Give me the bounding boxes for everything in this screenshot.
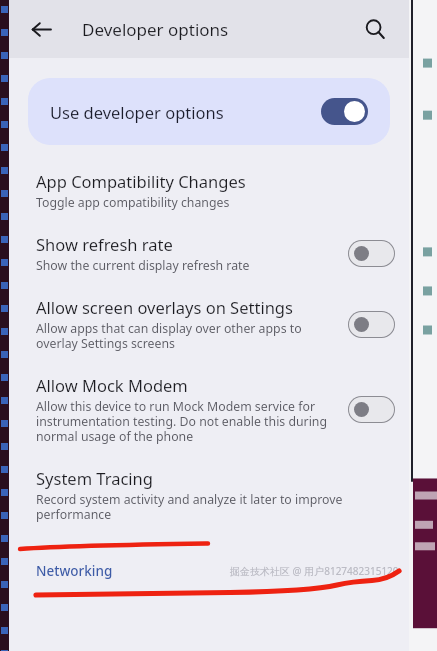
staticText: Toggle app compatibility changes: [36, 194, 230, 211]
button[interactable]: Toggle: [348, 396, 395, 423]
staticText: Record system activity and analyze it la…: [36, 491, 385, 523]
button[interactable]: Allow Mock Modem: [9, 363, 409, 456]
button[interactable]: Use developer options toggle: [321, 98, 368, 125]
button[interactable]: Toggle: [348, 240, 395, 267]
staticText: Allow Mock Modem: [36, 374, 188, 396]
button[interactable]: Search: [355, 9, 395, 49]
button[interactable]: Show refresh rate: [9, 222, 409, 285]
staticText: Show the current display refresh rate: [36, 257, 250, 274]
button[interactable]: Toggle: [348, 311, 395, 338]
button[interactable]: Allow screen overlays on Settings: [9, 285, 409, 363]
staticText: System Tracing: [36, 467, 153, 489]
staticText: Allow screen overlays on Settings: [36, 296, 293, 318]
button[interactable]: System Tracing: [9, 456, 409, 534]
staticText: 掘金技术社区 @ 用户8127482315120: [230, 564, 399, 578]
staticText: Allow apps that can display over other a…: [36, 320, 338, 352]
staticText: Use developer options: [50, 101, 321, 123]
staticText: Networking: [36, 562, 113, 580]
staticText: Show refresh rate: [36, 233, 173, 255]
button[interactable]: App Compatibility Changes: [9, 159, 409, 222]
staticText: Allow this device to run Mock Modem serv…: [36, 398, 338, 445]
button[interactable]: Back: [21, 9, 61, 49]
button[interactable]: Use developer options: [28, 78, 390, 145]
staticText: App Compatibility Changes: [36, 170, 246, 192]
staticText: Developer options: [82, 18, 229, 41]
